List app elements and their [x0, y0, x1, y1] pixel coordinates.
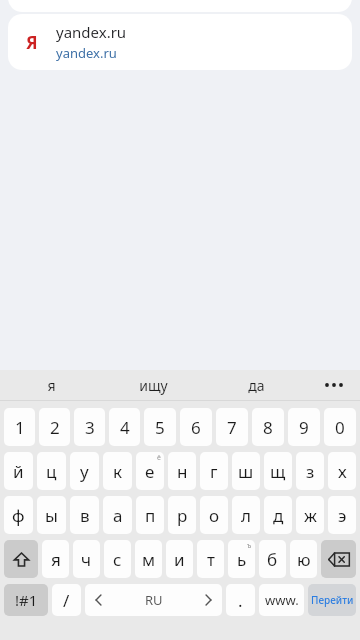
staticText: я [47, 376, 56, 395]
button[interactable]: у [70, 452, 99, 490]
button[interactable]: да [205, 370, 308, 400]
button[interactable]: ж [296, 496, 324, 534]
button[interactable]: 4 [109, 408, 140, 446]
staticText: о [209, 504, 220, 527]
button[interactable]: з [296, 452, 324, 490]
staticText: и [174, 548, 185, 571]
button[interactable]: 2 [39, 408, 70, 446]
staticText: з [306, 460, 315, 483]
staticText: ь [237, 548, 247, 571]
staticText: н [177, 460, 188, 483]
button[interactable]: н [168, 452, 196, 490]
staticText: ч [81, 548, 92, 571]
staticText: ищу [139, 376, 168, 395]
button[interactable]: / [52, 584, 81, 616]
button[interactable]: й [4, 452, 33, 490]
staticText: ё [157, 453, 161, 463]
button[interactable]: ц [37, 452, 66, 490]
button[interactable]: ь [228, 540, 255, 578]
button[interactable]: More suggestions [308, 370, 360, 400]
button[interactable]: www. [259, 584, 304, 616]
staticText: ы [45, 504, 58, 527]
button[interactable]: я [0, 370, 102, 400]
button[interactable]: 5 [144, 408, 176, 446]
staticText: щ [270, 460, 286, 483]
button[interactable]: 9 [288, 408, 320, 446]
staticText: л [241, 504, 251, 527]
staticText: yandex.ru [56, 44, 117, 62]
button[interactable]: ищу [102, 370, 205, 400]
button[interactable]: 8 [252, 408, 284, 446]
button[interactable]: ы [37, 496, 66, 534]
staticText: р [177, 504, 188, 527]
staticText: ф [12, 504, 25, 527]
staticText: www. [265, 591, 299, 609]
button[interactable]: я [42, 540, 69, 578]
button[interactable]: п [136, 496, 164, 534]
staticText: э [338, 504, 347, 527]
button[interactable]: к [103, 452, 132, 490]
staticText: / [63, 589, 70, 612]
button[interactable]: р [168, 496, 196, 534]
staticText: 3 [85, 416, 95, 439]
staticText: 9 [299, 416, 309, 439]
staticText: да [248, 376, 265, 395]
button[interactable]: ч [73, 540, 100, 578]
staticText: ю [297, 548, 311, 571]
button[interactable]: 1 [4, 408, 35, 446]
button[interactable]: Shift [4, 540, 38, 578]
button[interactable]: д [264, 496, 292, 534]
staticText: а [113, 504, 123, 527]
button[interactable]: б [259, 540, 286, 578]
staticText: 7 [227, 416, 237, 439]
staticText: у [80, 460, 89, 483]
button[interactable]: с [104, 540, 131, 578]
button[interactable]: э [328, 496, 356, 534]
staticText: в [80, 504, 90, 527]
staticText: с [113, 548, 122, 571]
button[interactable]: 7 [216, 408, 248, 446]
button[interactable]: м [135, 540, 162, 578]
staticText: г [210, 460, 218, 483]
button[interactable]: г [200, 452, 228, 490]
button[interactable]: о [200, 496, 228, 534]
button[interactable]: ш [232, 452, 260, 490]
button[interactable]: Backspace [321, 540, 356, 578]
staticText: д [273, 504, 284, 527]
staticText: yandex.ru [56, 22, 127, 42]
button[interactable]: и [166, 540, 193, 578]
button[interactable]: щ [264, 452, 292, 490]
button[interactable]: Перейти [308, 584, 356, 616]
staticText: п [145, 504, 156, 527]
button[interactable]: т [197, 540, 224, 578]
button[interactable]: ю [290, 540, 317, 578]
staticText: т [207, 548, 215, 571]
staticText: 4 [120, 416, 130, 439]
button[interactable]: л [232, 496, 260, 534]
staticText: е [145, 460, 155, 483]
staticText: Перейти [311, 593, 354, 607]
button[interactable]: в [70, 496, 99, 534]
button[interactable]: х [328, 452, 356, 490]
staticText: 6 [191, 416, 201, 439]
button[interactable]: а [103, 496, 132, 534]
button[interactable]: Я [8, 14, 352, 70]
button[interactable]: !#1 [4, 584, 48, 616]
button[interactable]: ф [4, 496, 33, 534]
button[interactable]: е [136, 452, 164, 490]
staticText: 2 [50, 416, 60, 439]
staticText: я [51, 548, 61, 571]
button[interactable]: 0 [324, 408, 356, 446]
button[interactable]: 3 [74, 408, 105, 446]
staticText: б [267, 548, 278, 571]
button[interactable]: Space [85, 584, 222, 616]
staticText: 0 [335, 416, 345, 439]
button[interactable]: 6 [180, 408, 212, 446]
staticText: ш [238, 460, 254, 483]
staticText: м [142, 548, 156, 571]
staticText: . [238, 589, 243, 612]
button[interactable]: . [226, 584, 255, 616]
staticText: ц [46, 460, 57, 483]
staticText: ж [304, 504, 317, 527]
